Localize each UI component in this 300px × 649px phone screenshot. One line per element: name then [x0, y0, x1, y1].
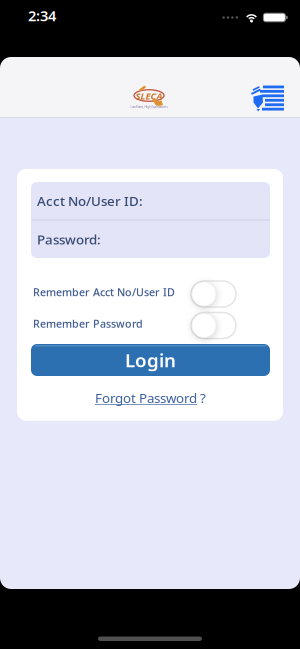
button[interactable]: Remember Password: [191, 312, 236, 338]
staticText: Acct No/User ID:: [37, 192, 143, 210]
staticText: Password:: [37, 230, 101, 248]
staticText: Forgot Password: [95, 389, 197, 407]
staticText: 2:34: [28, 6, 56, 25]
staticText: Remember Acct No/User ID: [33, 285, 175, 299]
staticText: Login: [125, 348, 176, 372]
button[interactable]: Password:: [31, 220, 270, 258]
staticText: Remember Password: [33, 316, 143, 331]
staticText: Low Rates, High Expectations: [87, 101, 211, 113]
button[interactable]: Remember Acct No/User ID: [191, 281, 236, 307]
button[interactable]: Acct No/User ID:: [31, 182, 270, 219]
staticText: ?: [200, 389, 206, 407]
button[interactable]: Sign Up: [251, 85, 284, 111]
button[interactable]: Forgot Password: [95, 389, 206, 407]
button[interactable]: Login: [31, 344, 270, 376]
staticText: SLECA: [135, 90, 162, 102]
